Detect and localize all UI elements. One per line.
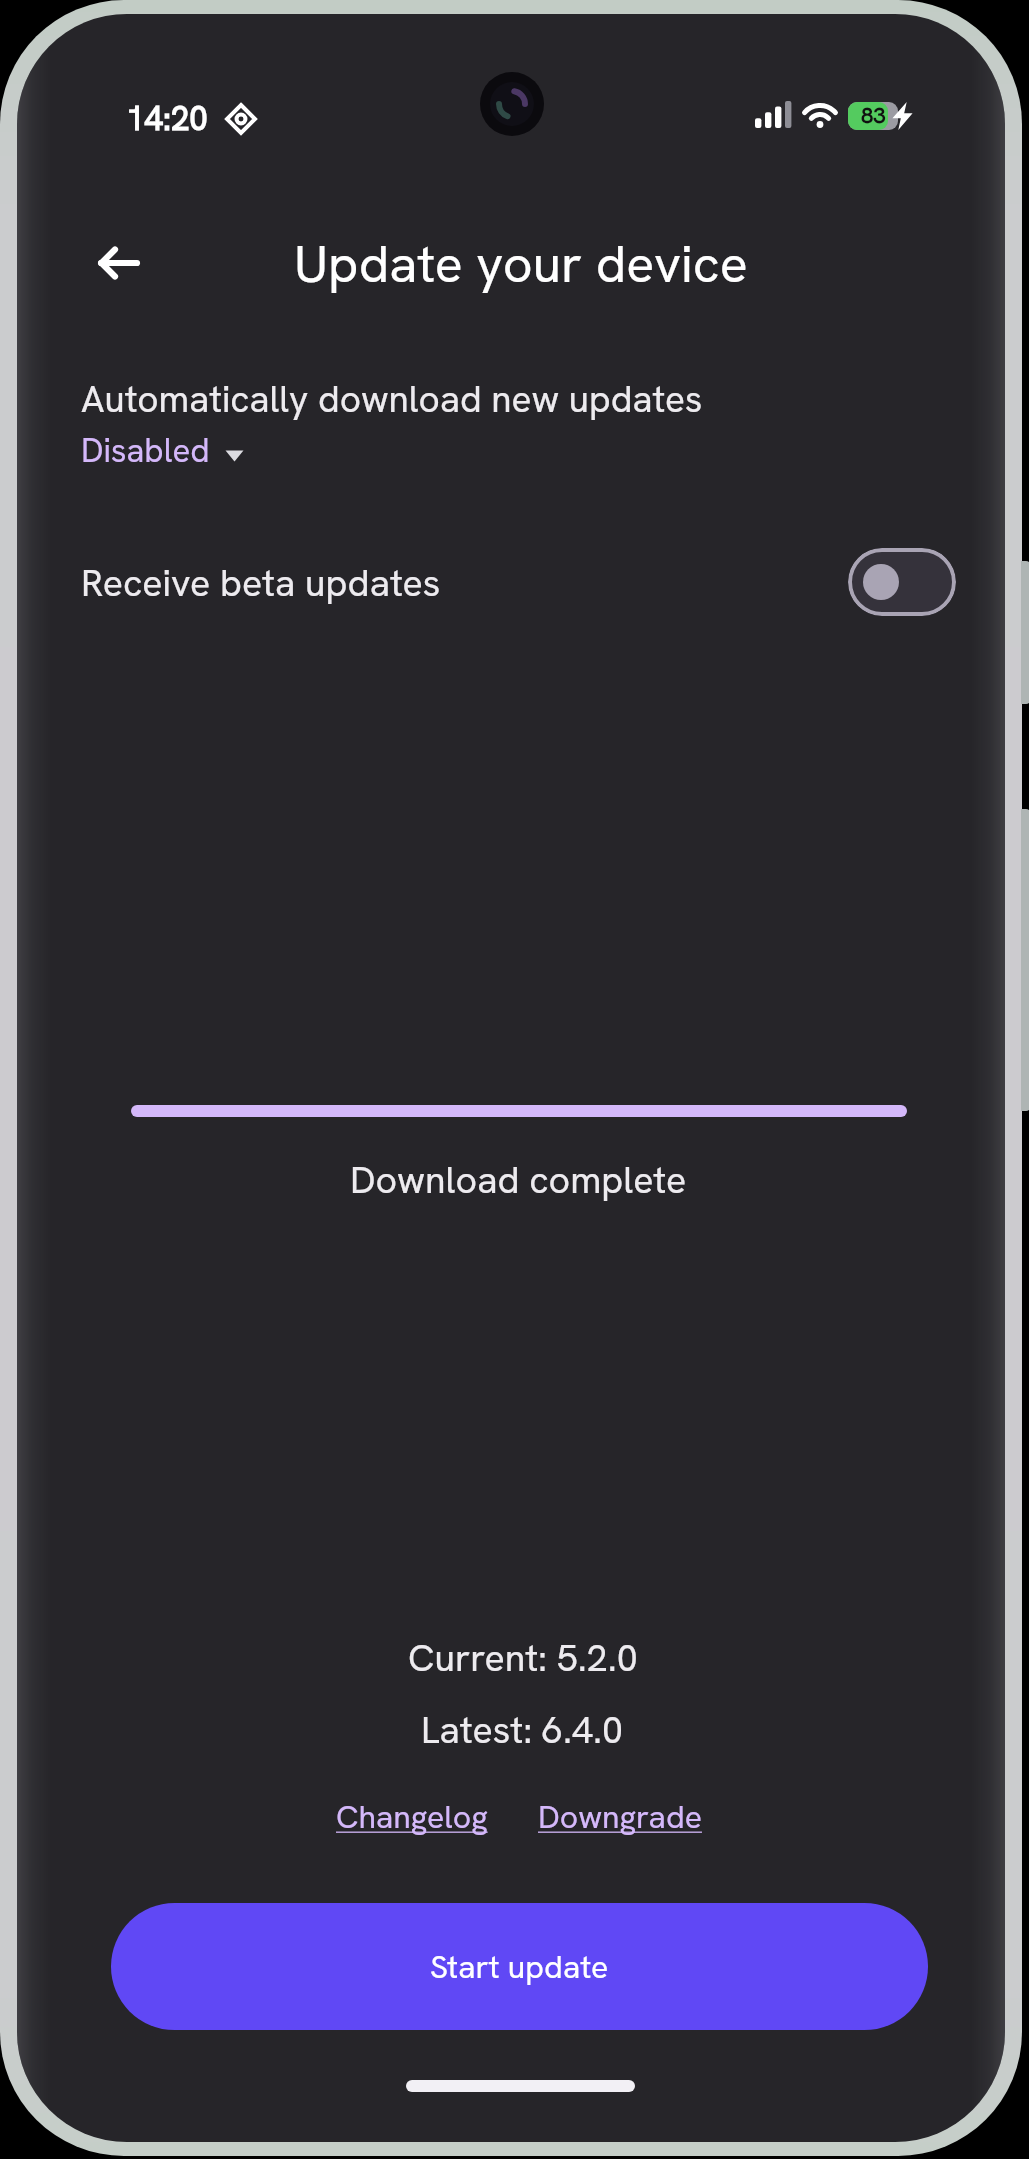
button[interactable]: Changelog [336,1796,488,1838]
staticText: Changelog [336,1796,488,1838]
button[interactable]: Back [86,231,150,295]
staticText: Download complete [350,1155,687,1204]
button[interactable]: Receive beta updates [0,528,1029,636]
staticText: Receive beta updates [81,558,441,607]
staticText: 83 [861,101,886,130]
staticText: Downgrade [538,1796,702,1838]
staticText: Start update [430,1946,609,1988]
button[interactable]: Disabled [81,429,244,472]
staticText: 14:20 [126,97,208,140]
staticText: Disabled [81,429,210,472]
button[interactable]: Downgrade [538,1796,702,1838]
button[interactable]: Start update [111,1903,928,2030]
staticText: Current: 5.2.0 [408,1633,638,1682]
staticText: Update your device [294,230,748,298]
staticText: Latest: 6.4.0 [421,1705,624,1754]
staticText: Automatically download new updates [81,375,703,423]
